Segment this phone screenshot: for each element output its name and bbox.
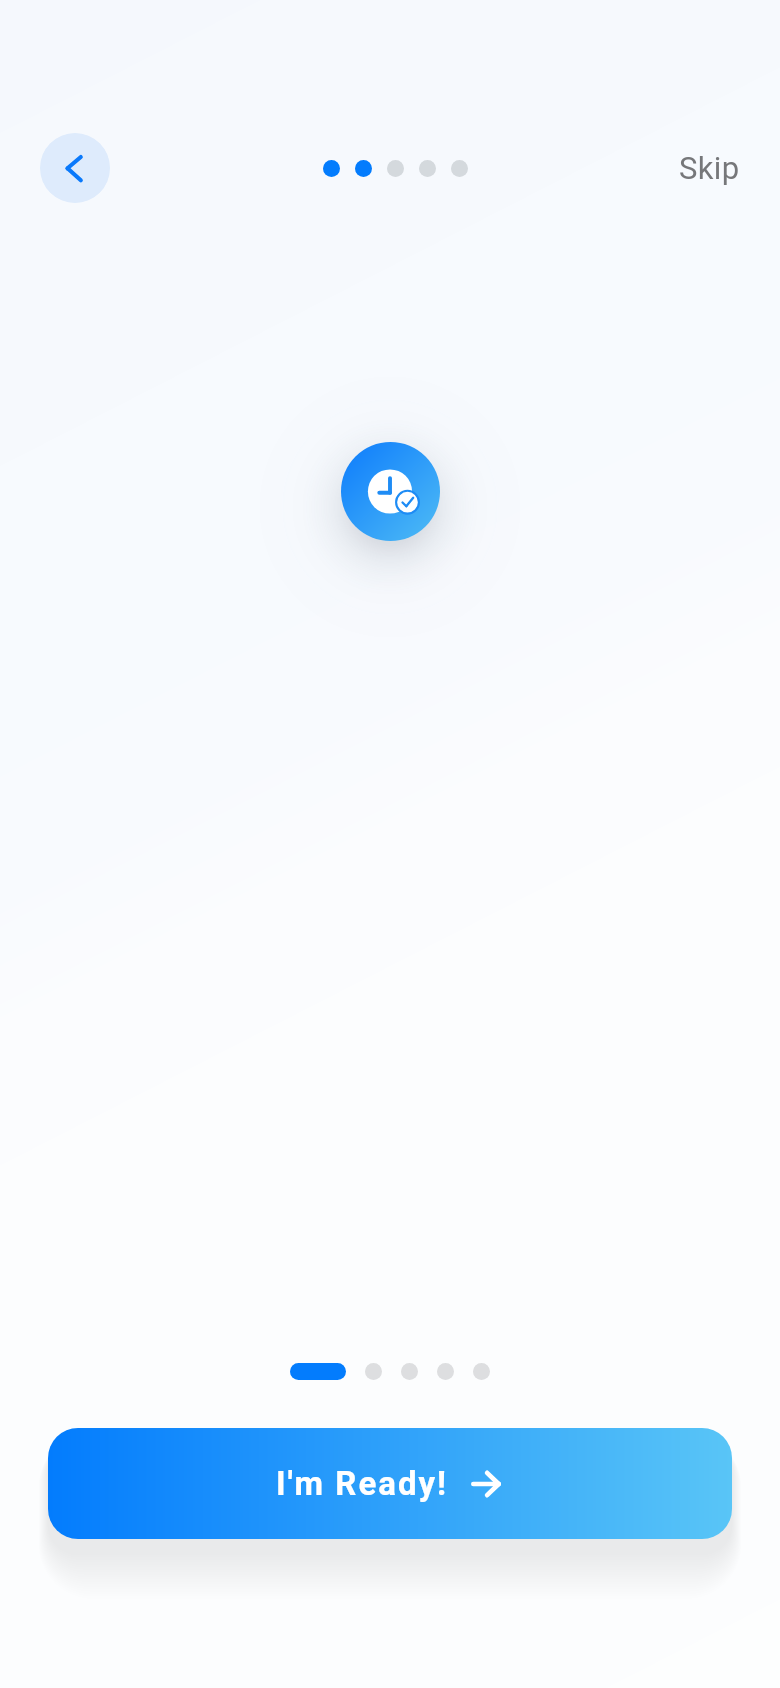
button[interactable]: Step 1 of 5 bbox=[280, 1351, 500, 1392]
staticText: Skip bbox=[679, 150, 740, 186]
other: Smart reminders bbox=[341, 442, 440, 541]
button[interactable]: Page 2 of 5 bbox=[313, 148, 478, 189]
button[interactable]: I'm Ready! bbox=[48, 1428, 732, 1539]
button[interactable]: Back bbox=[40, 133, 110, 203]
button[interactable]: Skip bbox=[659, 136, 759, 200]
staticText: I'm Ready! bbox=[276, 1464, 449, 1503]
